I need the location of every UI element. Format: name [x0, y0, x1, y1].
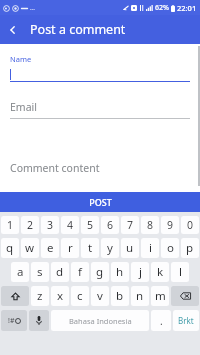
button[interactable]: l [171, 262, 189, 282]
staticText: . [160, 314, 163, 328]
button[interactable]: t [81, 238, 99, 258]
button[interactable]: Email [10, 100, 190, 119]
staticText: p [186, 240, 194, 256]
button[interactable]: f [71, 262, 89, 282]
staticText: Email [10, 100, 37, 114]
staticText: 8 [147, 218, 154, 232]
staticText: a [17, 264, 24, 280]
staticText: c [77, 288, 83, 304]
button[interactable]: 5 [81, 216, 99, 234]
button[interactable]: z [31, 286, 49, 306]
button[interactable]: 8 [141, 216, 159, 234]
button[interactable]: Voice input [29, 310, 49, 331]
button[interactable]: m [151, 286, 169, 306]
button[interactable]: Brkt [173, 310, 199, 331]
staticText: o [167, 240, 174, 256]
staticText: 5 [87, 218, 94, 232]
staticText: d [56, 264, 64, 280]
staticText: b [116, 288, 124, 304]
button[interactable]: o [161, 238, 179, 258]
button[interactable]: Shift [1, 286, 29, 306]
staticText: y [107, 240, 113, 256]
button[interactable]: g [91, 262, 109, 282]
button[interactable]: r [61, 238, 79, 258]
staticText: POST [89, 196, 112, 208]
button[interactable]: n [131, 286, 149, 306]
button[interactable]: 0 [181, 216, 199, 234]
button[interactable]: Back [0, 15, 26, 44]
staticText: t [88, 240, 93, 256]
staticText: Bahasa Indonesia [69, 316, 132, 326]
button[interactable]: j [131, 262, 149, 282]
button[interactable]: 1 [1, 216, 19, 234]
button[interactable]: d [51, 262, 69, 282]
staticText: Brkt [178, 315, 194, 326]
staticText: w [25, 240, 35, 256]
button[interactable]: q [1, 238, 19, 258]
button[interactable]: 3 [41, 216, 59, 234]
staticText: e [47, 240, 54, 256]
staticText: m [155, 288, 166, 304]
button[interactable]: u [121, 238, 139, 258]
button[interactable]: w [21, 238, 39, 258]
staticText: s [37, 264, 43, 280]
staticText: j [139, 264, 142, 280]
staticText: z [37, 288, 43, 304]
button[interactable]: b [111, 286, 129, 306]
button[interactable]: k [151, 262, 169, 282]
staticText: Name [10, 54, 32, 64]
button[interactable]: Bahasa Indonesia [51, 310, 149, 331]
button[interactable]: 6 [101, 216, 119, 234]
staticText: g [96, 264, 104, 280]
staticText: h [116, 264, 124, 280]
staticText: l [179, 264, 182, 280]
button[interactable]: v [91, 286, 109, 306]
button[interactable]: Symbols and emoji [1, 310, 27, 331]
staticText: 0 [187, 218, 194, 232]
button[interactable]: 7 [121, 216, 139, 234]
staticText: Comment content [10, 161, 100, 175]
staticText: 1 [7, 218, 14, 232]
button[interactable]: Comment content [10, 161, 190, 175]
staticText: k [157, 264, 164, 280]
button[interactable]: 2 [21, 216, 39, 234]
staticText: Post a comment [30, 21, 126, 38]
button[interactable]: s [31, 262, 49, 282]
staticText: 22:01 [177, 3, 197, 13]
button[interactable]: i [141, 238, 159, 258]
staticText: !# [8, 316, 15, 326]
button[interactable]: 4 [61, 216, 79, 234]
button[interactable]: e [41, 238, 59, 258]
staticText: r [68, 240, 73, 256]
button[interactable]: x [51, 286, 69, 306]
staticText: 62% [155, 3, 169, 13]
staticText: u [126, 240, 134, 256]
button[interactable]: . [151, 310, 171, 331]
staticText: n [136, 288, 144, 304]
staticText: f [78, 264, 82, 280]
staticText: 9 [167, 218, 174, 232]
staticText: 7 [127, 218, 134, 232]
button[interactable]: Backspace [171, 286, 199, 306]
button[interactable]: p [181, 238, 199, 258]
button[interactable]: y [101, 238, 119, 258]
staticText: 3 [47, 218, 54, 232]
staticText: 6 [107, 218, 114, 232]
button[interactable]: a [11, 262, 29, 282]
button[interactable]: 9 [161, 216, 179, 234]
staticText: 2 [27, 218, 34, 232]
staticText: 4 [67, 218, 74, 232]
button[interactable]: Name [10, 54, 190, 82]
button[interactable]: POST [0, 192, 200, 212]
staticText: ... [30, 4, 35, 12]
staticText: i [149, 240, 152, 256]
staticText: v [97, 288, 103, 304]
button[interactable]: h [111, 262, 129, 282]
button[interactable]: c [71, 286, 89, 306]
staticText: x [57, 288, 64, 304]
staticText: q [6, 240, 14, 256]
